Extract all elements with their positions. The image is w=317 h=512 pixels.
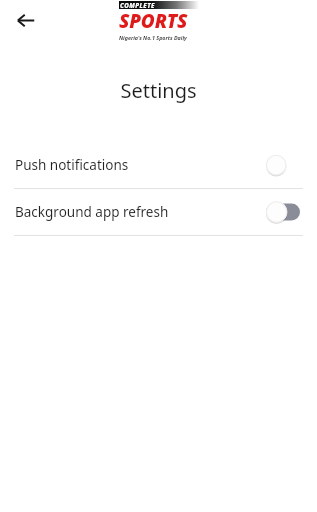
staticText: SPORTS — [119, 8, 188, 34]
staticText: COMPLETE — [120, 1, 156, 9]
staticText: Nigeria's No.1 Sports Daily — [119, 34, 187, 41]
staticText: Settings — [0, 77, 317, 104]
button[interactable]: Back — [8, 3, 42, 37]
staticText: Push notifications — [15, 156, 263, 174]
button[interactable]: Off — [263, 199, 303, 225]
button[interactable]: Push notifications — [0, 142, 317, 188]
staticText: Background app refresh — [15, 203, 263, 221]
button[interactable]: Background app refresh — [0, 189, 317, 235]
button[interactable]: Off — [263, 152, 303, 178]
